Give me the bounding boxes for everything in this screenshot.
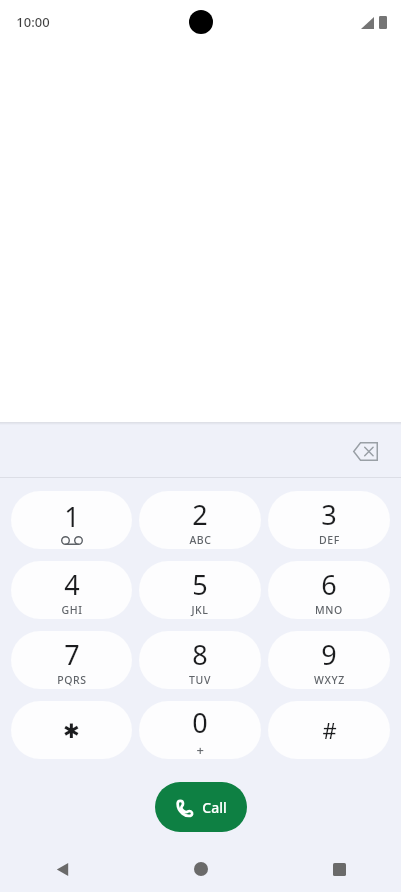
- button[interactable]: Home: [175, 846, 227, 892]
- staticText: 7: [64, 636, 80, 673]
- staticText: 10:00: [16, 13, 50, 31]
- staticText: 6: [321, 566, 337, 603]
- button[interactable]: Recent apps: [313, 846, 365, 892]
- button[interactable]: #: [268, 701, 390, 759]
- staticText: MNO: [315, 603, 343, 617]
- staticText: +: [196, 741, 205, 759]
- staticText: GHI: [61, 603, 83, 617]
- staticText: 2: [192, 496, 208, 533]
- button[interactable]: Backspace: [341, 427, 389, 475]
- button[interactable]: Call: [155, 782, 247, 832]
- staticText: WXYZ: [314, 673, 345, 687]
- button[interactable]: 4: [11, 561, 132, 619]
- button[interactable]: 1: [11, 491, 132, 549]
- staticText: 0: [192, 704, 208, 741]
- staticText: DEF: [319, 533, 340, 547]
- staticText: Call: [202, 798, 227, 817]
- staticText: 9: [321, 636, 337, 673]
- staticText: 8: [192, 636, 208, 673]
- staticText: ✱: [63, 719, 80, 742]
- button[interactable]: 8: [139, 631, 261, 689]
- staticText: 3: [321, 496, 337, 533]
- button[interactable]: 9: [268, 631, 390, 689]
- button[interactable]: 6: [268, 561, 390, 619]
- button[interactable]: 5: [139, 561, 261, 619]
- staticText: 1: [64, 498, 80, 535]
- staticText: 5: [192, 566, 208, 603]
- staticText: 4: [64, 566, 80, 603]
- button[interactable]: 0: [139, 701, 261, 759]
- button[interactable]: 2: [139, 491, 261, 549]
- button[interactable]: 3: [268, 491, 390, 549]
- staticText: TUV: [189, 673, 211, 687]
- button[interactable]: ✱: [11, 701, 132, 759]
- staticText: ABC: [189, 533, 212, 547]
- button[interactable]: 7: [11, 631, 132, 689]
- button[interactable]: Back: [36, 846, 88, 892]
- staticText: PQRS: [57, 673, 87, 687]
- staticText: JKL: [191, 603, 209, 617]
- staticText: #: [322, 715, 337, 745]
